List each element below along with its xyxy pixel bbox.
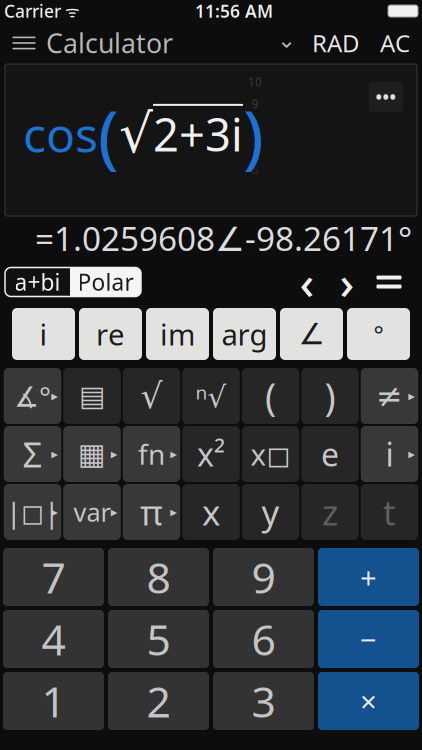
button[interactable]: (: [242, 368, 299, 424]
staticText: ▸: [170, 446, 177, 461]
staticText: 2: [146, 673, 170, 729]
button[interactable]: 4: [3, 610, 104, 668]
button[interactable]: ▦: [63, 426, 121, 482]
staticText: ∡°: [14, 377, 51, 415]
staticText: Σ: [22, 431, 42, 477]
button[interactable]: re: [79, 308, 142, 360]
button[interactable]: x: [182, 484, 240, 540]
button[interactable]: z: [301, 484, 359, 540]
staticText: ▸: [51, 388, 58, 403]
staticText: im: [160, 314, 195, 353]
staticText: ▸: [51, 446, 58, 461]
staticText: =1.0259608∠-98.26171°: [35, 216, 412, 260]
button[interactable]: 6: [213, 610, 314, 668]
button[interactable]: a+bi: [5, 267, 70, 296]
staticText: π: [140, 489, 163, 535]
staticText: Polar: [77, 267, 133, 297]
staticText: √: [140, 376, 162, 416]
button[interactable]: 9: [213, 548, 314, 606]
button[interactable]: 3: [213, 672, 314, 730]
staticText: 6: [251, 611, 275, 667]
staticText: ▸: [51, 504, 58, 519]
button[interactable]: Equals: [367, 264, 411, 300]
staticText: y: [261, 489, 279, 535]
staticText: 11:56 AM: [195, 0, 273, 22]
staticText: 9: [251, 549, 275, 605]
staticText: +: [360, 557, 377, 596]
button[interactable]: arg: [213, 308, 276, 360]
button[interactable]: RAD: [302, 23, 370, 63]
button[interactable]: ): [301, 368, 359, 424]
staticText: ∠: [298, 317, 324, 351]
button[interactable]: im: [146, 308, 209, 360]
staticText: re: [96, 314, 125, 353]
button[interactable]: 5: [108, 610, 209, 668]
button[interactable]: 7: [3, 548, 104, 606]
button[interactable]: More options: [369, 82, 403, 112]
staticText: 3: [251, 673, 275, 729]
staticText: 9: [251, 96, 258, 112]
staticText: x: [202, 489, 220, 535]
button[interactable]: i: [361, 426, 418, 482]
button[interactable]: π: [123, 484, 180, 540]
staticText: ⁿ√: [195, 376, 226, 415]
staticText: √: [119, 104, 153, 164]
staticText: °: [373, 318, 383, 350]
staticText: x²: [197, 433, 225, 475]
button[interactable]: Polar: [70, 267, 141, 296]
staticText: RAD: [312, 27, 360, 59]
button[interactable]: ∡°: [4, 368, 61, 424]
staticText: 5: [146, 611, 170, 667]
staticText: ▸: [170, 504, 177, 519]
button[interactable]: ≠: [361, 368, 418, 424]
button[interactable]: Calculator: [46, 23, 302, 63]
staticText: −: [360, 619, 377, 658]
staticText: 7: [41, 549, 65, 605]
staticText: ▤: [79, 380, 105, 412]
staticText: 8: [251, 118, 258, 134]
button[interactable]: e: [301, 426, 359, 482]
staticText: ᯤ: [61, 0, 80, 22]
button[interactable]: ×: [318, 672, 419, 730]
button[interactable]: √: [123, 368, 180, 424]
button[interactable]: Menu: [2, 23, 46, 63]
button[interactable]: AC: [370, 23, 420, 63]
button[interactable]: Next: [327, 264, 367, 300]
staticText: ): [243, 88, 264, 180]
staticText: ×: [360, 681, 377, 720]
staticText: 7: [251, 140, 258, 156]
staticText: ▸: [408, 388, 415, 403]
button[interactable]: °: [347, 308, 410, 360]
staticText: arg: [221, 314, 267, 353]
staticText: ›: [339, 252, 354, 312]
button[interactable]: −: [318, 610, 419, 668]
staticText: •••: [375, 85, 396, 108]
button[interactable]: ▤: [63, 368, 121, 424]
staticText: Carrier: [4, 0, 61, 22]
button[interactable]: +: [318, 548, 419, 606]
staticText: ≠: [376, 378, 403, 414]
button[interactable]: x²: [182, 426, 240, 482]
button[interactable]: x◻: [242, 426, 299, 482]
button[interactable]: Σ: [4, 426, 61, 482]
button[interactable]: Previous: [287, 264, 327, 300]
staticText: a+bi: [14, 267, 60, 297]
button[interactable]: 2: [108, 672, 209, 730]
button[interactable]: |◻|: [4, 484, 61, 540]
button[interactable]: fn: [123, 426, 180, 482]
staticText: e: [321, 433, 339, 475]
button[interactable]: t: [361, 484, 418, 540]
staticText: 4: [41, 611, 65, 667]
button[interactable]: i: [12, 308, 75, 360]
staticText: ▸: [111, 504, 118, 519]
button[interactable]: y: [242, 484, 299, 540]
staticText: ▦: [78, 437, 106, 471]
staticText: 2+3i: [153, 104, 243, 164]
button[interactable]: 8: [108, 548, 209, 606]
button[interactable]: 1: [3, 672, 104, 730]
button[interactable]: ∠: [280, 308, 343, 360]
staticText: fn: [138, 435, 165, 473]
button[interactable]: ⁿ√: [182, 368, 240, 424]
button[interactable]: var: [63, 484, 121, 540]
staticText: ): [324, 371, 335, 421]
